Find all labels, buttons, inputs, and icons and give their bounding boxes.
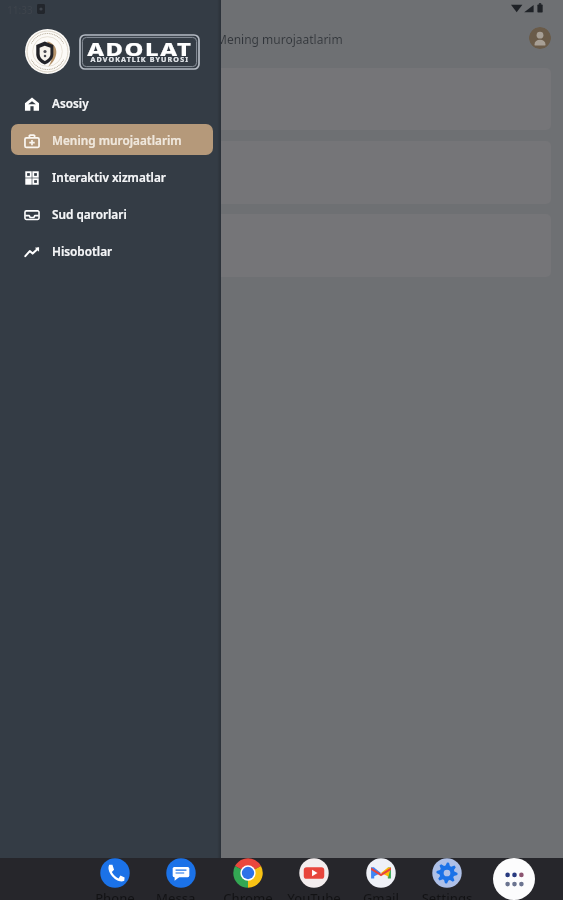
button[interactable]	[12, 141, 551, 204]
staticText: Settings	[420, 889, 474, 900]
button[interactable]: Account	[529, 27, 551, 49]
staticText: Phone	[88, 889, 142, 900]
staticText: ADVOKATLIK BYUROSI	[90, 55, 189, 64]
button[interactable]: Hisobotlar	[11, 235, 213, 266]
staticText: Mening murojaatlarim	[216, 31, 343, 47]
staticText: Mening murojaatlarim	[52, 132, 182, 148]
staticText: YouTube	[287, 889, 341, 900]
button[interactable]: Phone	[99, 857, 131, 889]
button[interactable]	[12, 68, 551, 130]
staticText: Asosiy	[52, 95, 89, 111]
staticText: Sud qarorlari	[52, 206, 127, 222]
staticText: Gmail	[354, 889, 408, 900]
button[interactable]	[12, 214, 551, 277]
staticText: Chrome	[221, 889, 275, 900]
button[interactable]: Sud qarorlari	[11, 198, 213, 229]
button[interactable]: YouTube	[298, 857, 330, 889]
button[interactable]: Settings	[431, 857, 463, 889]
staticText: ADOLAT	[87, 37, 193, 62]
button[interactable]: Mening murojaatlarim	[11, 124, 213, 155]
staticText: Interaktiv xizmatlar	[52, 169, 166, 185]
button[interactable]: Messages	[165, 857, 197, 889]
staticText: Messages	[154, 889, 208, 900]
button[interactable]: Interaktiv xizmatlar	[11, 161, 213, 192]
button[interactable]: Gmail	[365, 857, 397, 889]
button[interactable]: All apps	[493, 858, 535, 900]
button[interactable]: Asosiy	[11, 87, 213, 118]
staticText: Hisobotlar	[52, 243, 113, 259]
button[interactable]: Chrome	[232, 857, 264, 889]
